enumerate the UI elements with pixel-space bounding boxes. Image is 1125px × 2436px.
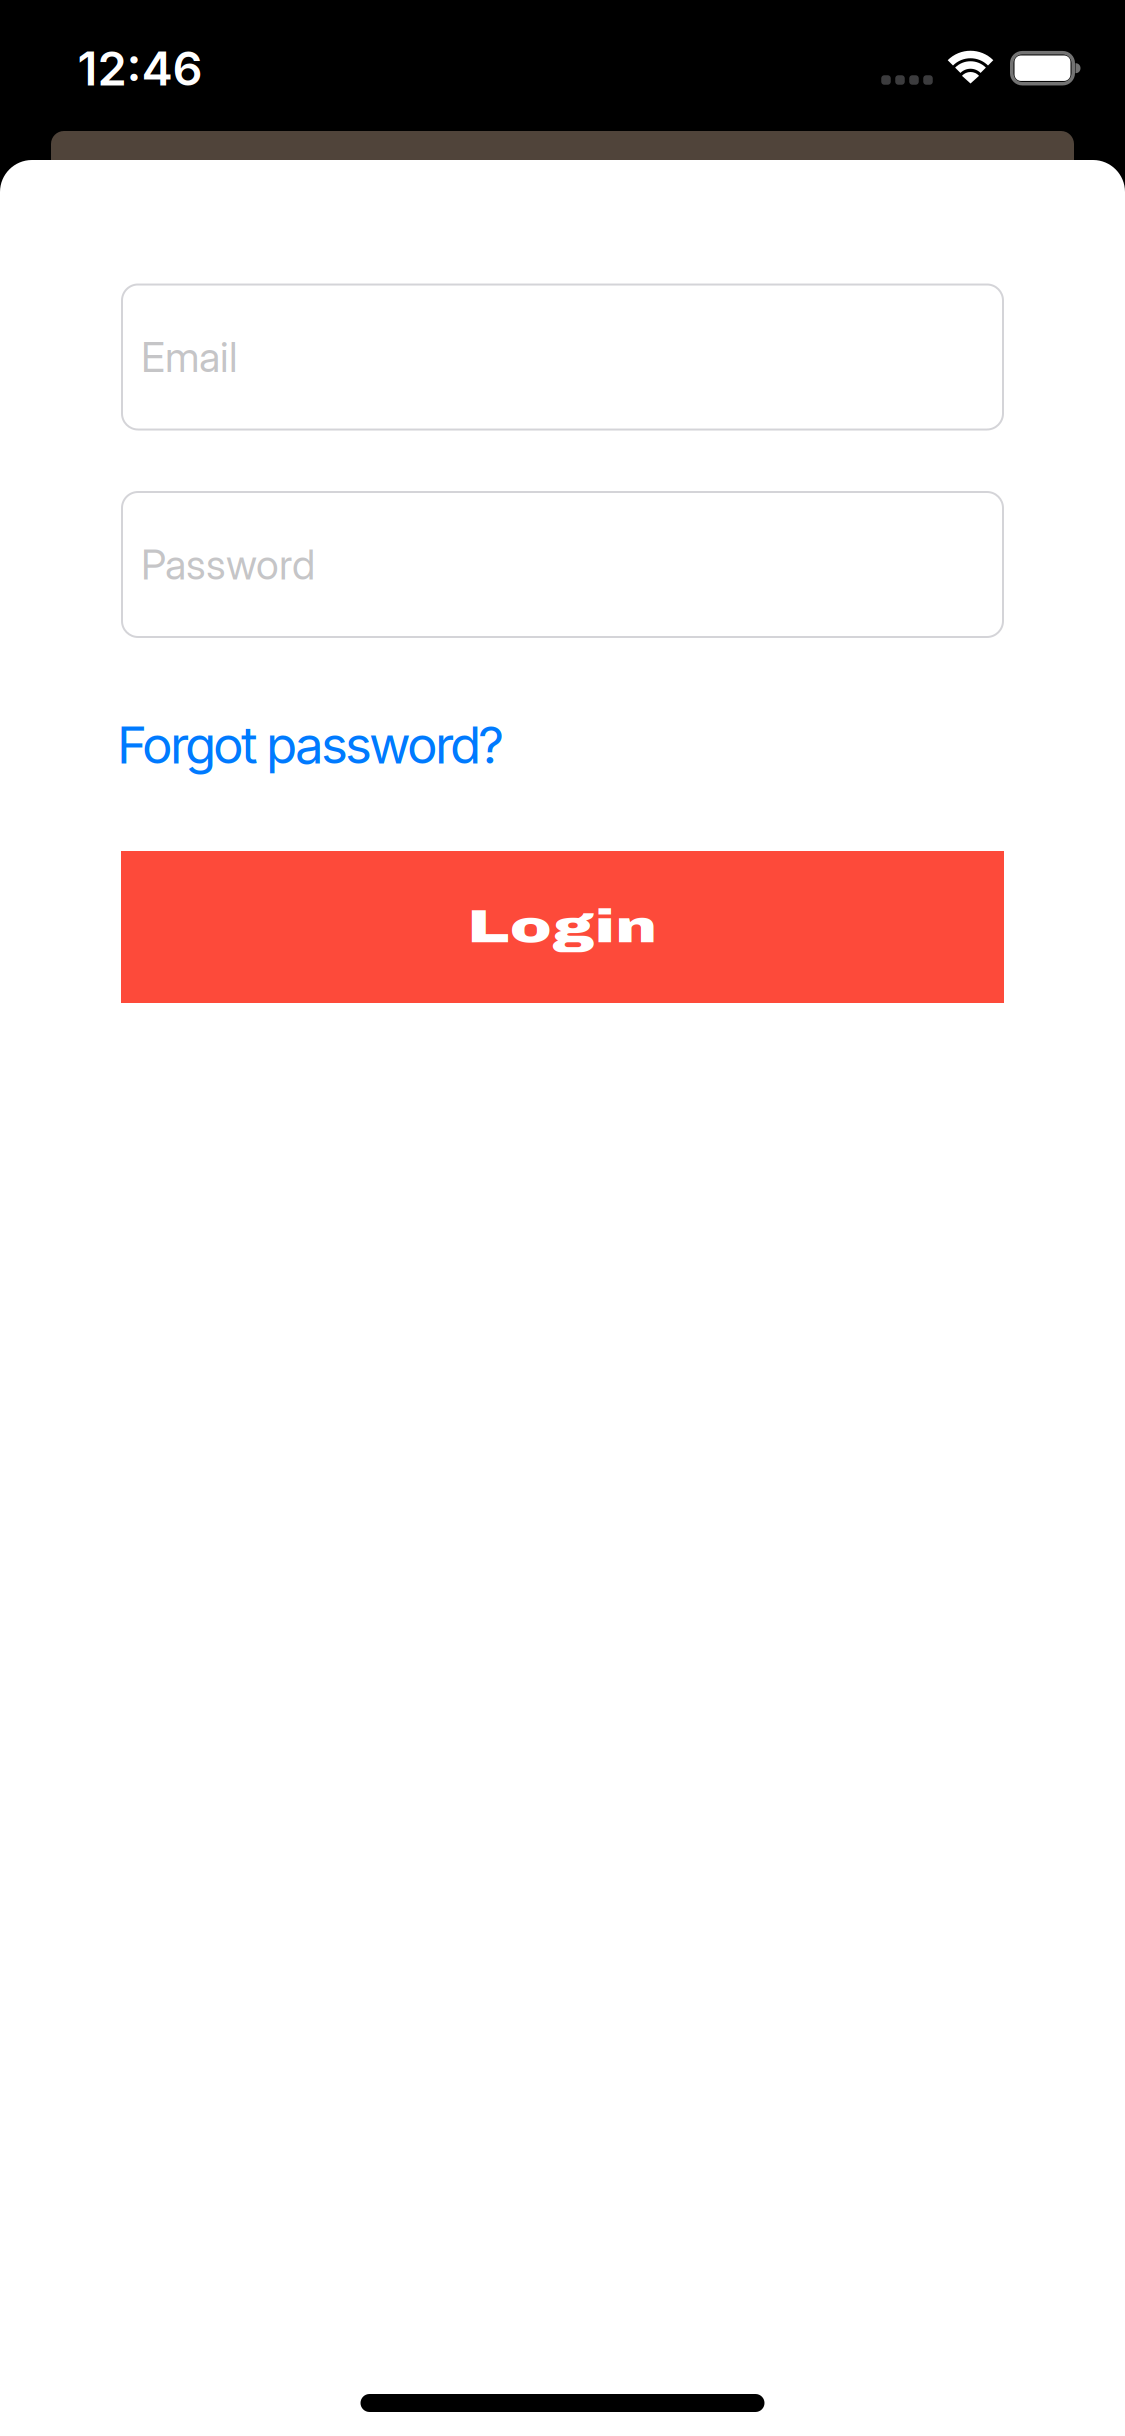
staticText: Forgot password? [117,714,504,776]
button[interactable]: Forgot password? [117,714,504,776]
button[interactable]: Login [121,851,1004,1003]
textField[interactable]: Email [121,283,1004,430]
staticText: 12:46 [77,40,202,97]
staticText: Login [493,902,632,952]
textField[interactable]: Password [121,491,1004,638]
staticText: Password [141,540,315,589]
staticText: Email [141,332,238,382]
